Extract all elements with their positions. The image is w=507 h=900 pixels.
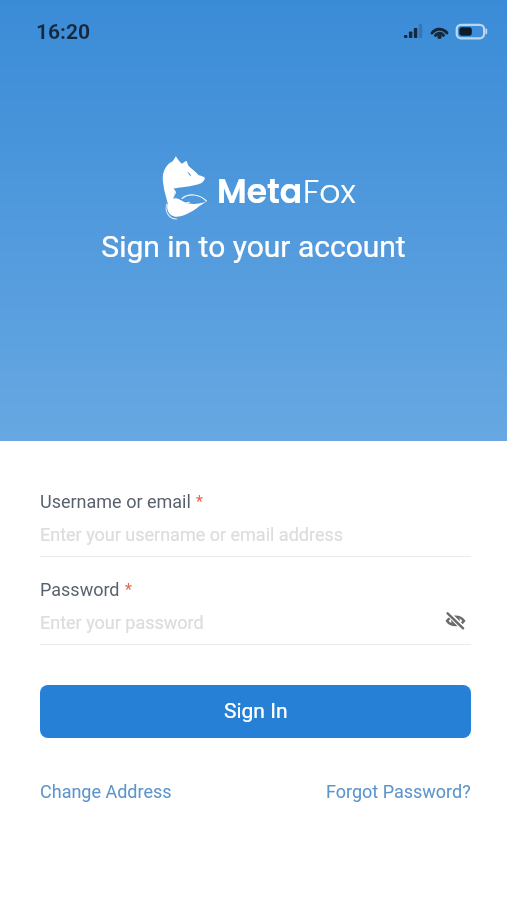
staticText: Password (40, 579, 120, 600)
staticText: * (125, 580, 132, 599)
staticText: Username or email (40, 491, 191, 512)
staticText: Forgot Password? (326, 781, 471, 802)
staticText: Sign In (224, 699, 288, 724)
staticText: Meta (217, 168, 303, 214)
staticText: Fox (303, 168, 356, 214)
staticText: Enter your password (40, 612, 441, 633)
staticText: Sign in to your account (101, 229, 406, 264)
staticText: Change Address (40, 781, 172, 802)
button[interactable]: Change Address (40, 777, 172, 806)
staticText: Enter your username or email address (40, 524, 471, 545)
button[interactable]: Show password (440, 606, 470, 634)
button[interactable]: Forgot Password? (326, 777, 471, 806)
staticText: * (196, 492, 203, 511)
staticText: 16:20 (36, 20, 91, 45)
button[interactable]: Sign In (40, 685, 471, 738)
